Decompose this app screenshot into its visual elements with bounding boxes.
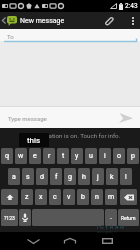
- button[interactable]: j: [92, 168, 104, 185]
- button[interactable]: y: [71, 148, 83, 164]
- staticText: p: [131, 152, 135, 160]
- staticText: c: [53, 193, 57, 201]
- button[interactable]: this: [19, 133, 49, 147]
- button[interactable]: q: [1, 148, 13, 164]
- staticText: d: [40, 173, 44, 181]
- staticText: New message: [20, 17, 65, 25]
- button[interactable]: Return: [118, 209, 139, 226]
- staticText: n: [95, 193, 99, 201]
- button[interactable]: s: [22, 168, 34, 185]
- button[interactable]: p: [127, 148, 139, 164]
- staticText: m: [108, 193, 115, 201]
- staticText: r: [48, 152, 51, 160]
- button[interactable]: v: [63, 189, 75, 205]
- staticText: z: [25, 193, 29, 201]
- button[interactable]: b: [77, 189, 89, 205]
- staticText: .: [110, 212, 113, 221]
- button[interactable]: Back: [22, 232, 44, 250]
- staticText: e: [33, 152, 37, 160]
- button[interactable]: f: [50, 168, 62, 185]
- staticText: g: [68, 173, 72, 181]
- staticText: l: [125, 173, 127, 181]
- button[interactable]: w: [15, 148, 27, 164]
- staticText: i: [104, 152, 106, 160]
- staticText: w: [18, 152, 24, 160]
- button[interactable]: Attach: [101, 12, 118, 29]
- staticText: b: [81, 193, 85, 201]
- staticText: y: [75, 152, 79, 160]
- staticText: j: [97, 173, 99, 181]
- staticText: this: [27, 136, 41, 145]
- button[interactable]: z: [21, 189, 33, 205]
- staticText: u: [89, 152, 93, 160]
- button[interactable]: Backspace: [120, 189, 137, 205]
- button[interactable]: r: [43, 148, 55, 164]
- button[interactable]: Voice input: [19, 209, 31, 226]
- button[interactable]: t: [57, 148, 69, 164]
- button[interactable]: i: [99, 148, 111, 164]
- staticText: To: [7, 33, 14, 40]
- staticText: k: [110, 173, 114, 181]
- button[interactable]: x: [35, 189, 47, 205]
- button[interactable]: New message: [0, 12, 65, 29]
- staticText: q: [5, 152, 9, 160]
- staticText: Personalization is on. Touch for info.: [0, 132, 140, 139]
- button[interactable]: n: [91, 189, 103, 205]
- button[interactable]: Period: [105, 209, 117, 226]
- button[interactable]: o: [113, 148, 125, 164]
- staticText: s: [26, 173, 30, 181]
- staticText: ?123: [4, 215, 15, 221]
- staticText: a: [12, 173, 16, 181]
- button[interactable]: a: [8, 168, 20, 185]
- staticText: Type message: [8, 115, 47, 122]
- staticText: Return: [121, 215, 136, 221]
- staticText: www.igyaan.in: [97, 230, 117, 234]
- button[interactable]: m: [105, 189, 117, 205]
- button[interactable]: More options: [126, 12, 140, 29]
- button[interactable]: Send: [113, 107, 138, 128]
- button[interactable]: k: [106, 168, 118, 185]
- staticText: v: [67, 193, 71, 201]
- button[interactable]: u: [85, 148, 97, 164]
- button[interactable]: h: [78, 168, 90, 185]
- staticText: x: [39, 193, 43, 201]
- staticText: I G Y A A N: [97, 224, 124, 230]
- staticText: f: [55, 173, 58, 181]
- staticText: t: [62, 152, 65, 160]
- staticText: 2:43: [125, 2, 138, 10]
- button[interactable]: Home: [59, 232, 81, 250]
- button[interactable]: d: [36, 168, 48, 185]
- button[interactable]: e: [29, 148, 41, 164]
- button[interactable]: l: [120, 168, 132, 185]
- staticText: h: [82, 173, 86, 181]
- button[interactable]: c: [49, 189, 61, 205]
- staticText: o: [117, 152, 121, 160]
- button[interactable]: Shift: [1, 189, 18, 205]
- button[interactable]: Symbols: [1, 209, 18, 226]
- button[interactable]: g: [64, 168, 76, 185]
- button[interactable]: Recent apps: [96, 232, 118, 250]
